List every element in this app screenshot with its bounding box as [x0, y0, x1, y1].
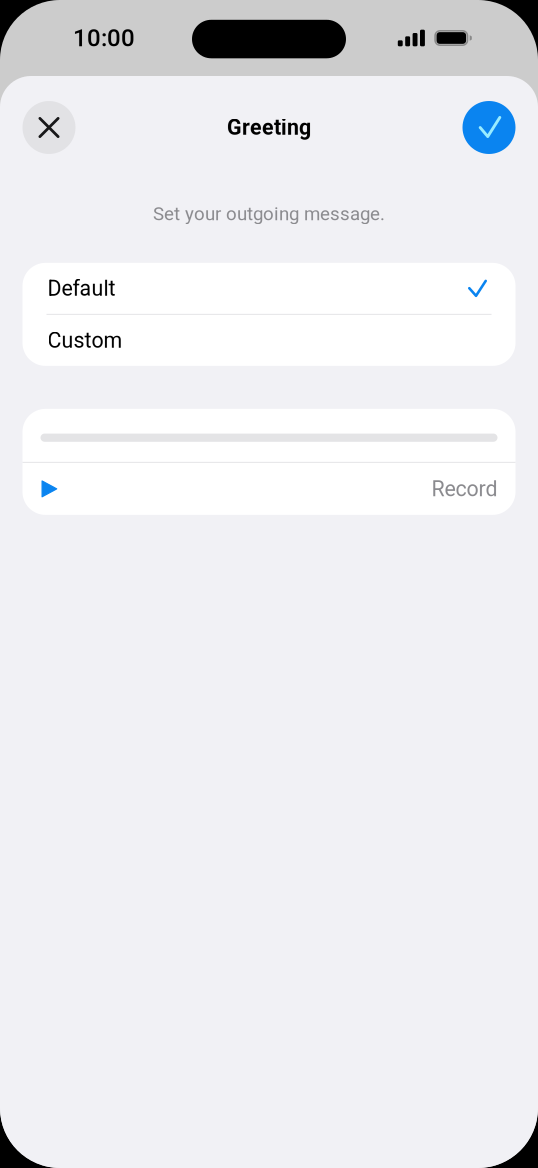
- button[interactable]: Record: [22, 463, 515, 515]
- button[interactable]: Custom: [22, 315, 515, 366]
- staticText: Custom: [47, 328, 122, 353]
- button[interactable]: Close: [22, 101, 75, 154]
- staticText: Set your outgoing message.: [153, 203, 385, 225]
- button[interactable]: Default: [22, 263, 515, 314]
- staticText: 10:00: [73, 24, 135, 52]
- staticText: Greeting: [227, 115, 311, 140]
- button[interactable]: Done: [462, 101, 515, 154]
- staticText: Default: [47, 276, 115, 301]
- staticText: Record: [431, 476, 497, 501]
